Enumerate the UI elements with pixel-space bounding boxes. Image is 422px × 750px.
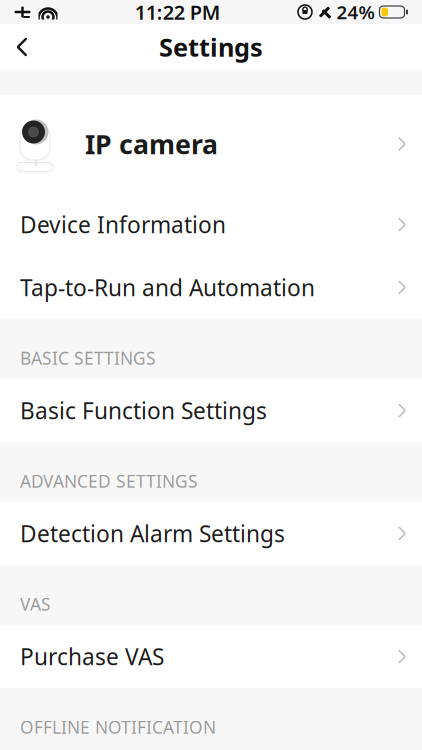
staticText: Device Information bbox=[20, 209, 226, 239]
staticText: 24% bbox=[336, 0, 374, 24]
staticText: Tap-to-Run and Automation bbox=[20, 272, 315, 302]
button[interactable]: Basic Function Settings bbox=[0, 379, 422, 442]
staticText: IP camera bbox=[85, 126, 218, 162]
staticText: Basic Function Settings bbox=[20, 395, 267, 425]
staticText: ADVANCED SETTINGS bbox=[20, 469, 198, 492]
staticText: Purchase VAS bbox=[20, 641, 164, 671]
button[interactable]: Detection Alarm Settings bbox=[0, 502, 422, 565]
button[interactable]: Back bbox=[0, 25, 44, 69]
button[interactable]: Tap-to-Run and Automation bbox=[0, 256, 422, 319]
staticText: BASIC SETTINGS bbox=[20, 346, 156, 369]
staticText: VAS bbox=[20, 592, 51, 615]
button[interactable]: Device Information bbox=[0, 193, 422, 256]
staticText: OFFLINE NOTIFICATION bbox=[20, 715, 216, 738]
button[interactable]: IP camera bbox=[0, 95, 422, 193]
staticText: 11:22 PM bbox=[135, 0, 221, 25]
staticText: Settings bbox=[159, 30, 263, 64]
button[interactable]: Purchase VAS bbox=[0, 625, 422, 688]
staticText: Detection Alarm Settings bbox=[20, 518, 285, 548]
